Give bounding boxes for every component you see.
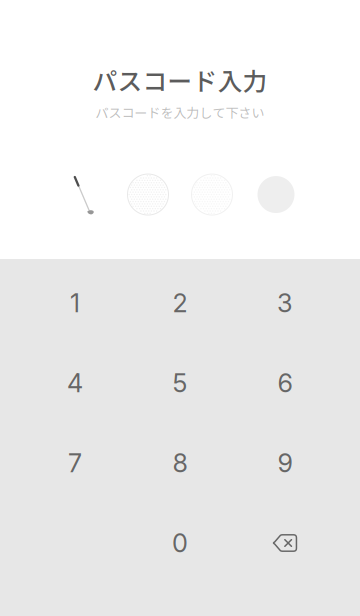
staticText: 9 [277, 448, 292, 478]
staticText: 8 [172, 448, 187, 478]
staticText: 7 [68, 448, 82, 478]
staticText: 0 [172, 528, 188, 558]
button[interactable]: 3 [232, 263, 337, 343]
staticText: 2 [172, 288, 187, 318]
button[interactable]: 2 [127, 263, 232, 343]
button[interactable]: 8 [127, 423, 232, 503]
button[interactable]: 5 [127, 343, 232, 423]
staticText: パスコードを入力して下さい [95, 103, 264, 121]
button[interactable]: 1 [22, 263, 127, 343]
staticText: パスコード入力 [92, 62, 267, 98]
staticText: 1 [70, 288, 80, 318]
button[interactable]: 9 [232, 423, 337, 503]
staticText: 5 [172, 368, 187, 398]
button[interactable]: 6 [232, 343, 337, 423]
staticText: 6 [277, 368, 292, 398]
button[interactable]: 0 [127, 503, 232, 583]
button[interactable]: Delete [232, 503, 337, 583]
staticText: 4 [67, 368, 83, 398]
button[interactable]: 4 [22, 343, 127, 423]
button[interactable]: 7 [22, 423, 127, 503]
staticText: 3 [277, 288, 293, 318]
